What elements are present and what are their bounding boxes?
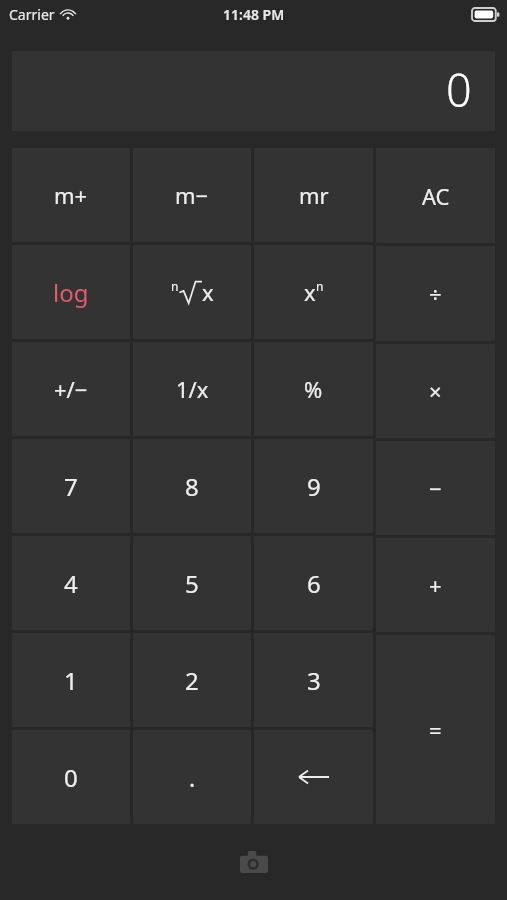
button[interactable]: 2 bbox=[133, 633, 251, 727]
staticText: 9 bbox=[307, 470, 321, 503]
staticText: Carrier bbox=[9, 5, 55, 24]
staticText: AC bbox=[422, 181, 450, 211]
staticText: × bbox=[429, 376, 442, 406]
staticText: 8 bbox=[185, 470, 199, 503]
staticText: mr bbox=[299, 180, 329, 210]
button[interactable]: nth root of x bbox=[133, 245, 251, 339]
button[interactable]: 3 bbox=[254, 633, 373, 727]
staticText: n bbox=[171, 278, 179, 294]
button[interactable]: 1/x bbox=[133, 342, 251, 436]
staticText: 2 bbox=[185, 664, 199, 697]
button[interactable]: 7 bbox=[12, 439, 130, 533]
staticText: 1/x bbox=[176, 374, 209, 404]
button[interactable]: Multiply bbox=[376, 344, 495, 438]
button[interactable]: 0 bbox=[12, 51, 495, 131]
staticText: 11:48 PM bbox=[223, 5, 285, 24]
staticText: m+ bbox=[54, 180, 88, 210]
staticText: m− bbox=[175, 180, 209, 210]
staticText: 0 bbox=[446, 59, 472, 120]
button[interactable]: Divide bbox=[376, 246, 495, 341]
button[interactable]: Backspace bbox=[254, 730, 373, 824]
button[interactable]: 9 bbox=[254, 439, 373, 533]
button[interactable]: 0 bbox=[12, 730, 130, 824]
staticText: x bbox=[304, 277, 316, 307]
button[interactable]: Plus bbox=[376, 538, 495, 632]
staticText: 5 bbox=[185, 567, 199, 600]
staticText: 7 bbox=[64, 470, 78, 503]
button[interactable]: 8 bbox=[133, 439, 251, 533]
button[interactable]: Camera bbox=[232, 840, 276, 884]
button[interactable]: log bbox=[12, 245, 130, 339]
staticText: x bbox=[202, 277, 214, 307]
staticText: − bbox=[429, 473, 442, 503]
staticText: 0 bbox=[64, 761, 78, 794]
button[interactable]: mr bbox=[254, 148, 373, 242]
staticText: = bbox=[429, 715, 442, 745]
staticText: 3 bbox=[307, 664, 321, 697]
button[interactable]: +/− bbox=[12, 342, 130, 436]
staticText: 6 bbox=[307, 567, 321, 600]
button[interactable]: Equals bbox=[376, 635, 495, 824]
staticText: 1 bbox=[64, 664, 78, 697]
button[interactable]: AC bbox=[376, 148, 495, 243]
button[interactable]: % bbox=[254, 342, 373, 436]
staticText: log bbox=[53, 276, 89, 309]
staticText: n bbox=[316, 278, 324, 294]
button[interactable]: 5 bbox=[133, 536, 251, 630]
button[interactable]: 6 bbox=[254, 536, 373, 630]
staticText: ÷ bbox=[429, 279, 442, 309]
button[interactable]: . bbox=[133, 730, 251, 824]
button[interactable]: x to the power n bbox=[254, 245, 373, 339]
button[interactable]: Minus bbox=[376, 441, 495, 535]
staticText: . bbox=[189, 762, 196, 793]
staticText: +/− bbox=[54, 374, 88, 404]
button[interactable]: m− bbox=[133, 148, 251, 242]
button[interactable]: 4 bbox=[12, 536, 130, 630]
staticText: + bbox=[429, 570, 442, 600]
staticText: 4 bbox=[64, 567, 78, 600]
button[interactable]: m+ bbox=[12, 148, 130, 242]
staticText: % bbox=[304, 374, 323, 404]
button[interactable]: 1 bbox=[12, 633, 130, 727]
